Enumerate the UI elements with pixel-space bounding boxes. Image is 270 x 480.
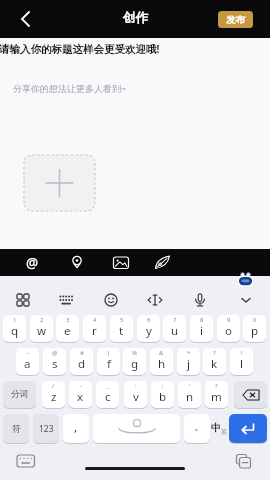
staticText: 9 xyxy=(227,316,231,324)
button[interactable]: ~ xyxy=(16,348,39,375)
staticText: a xyxy=(24,356,31,372)
button[interactable] xyxy=(188,288,212,312)
button[interactable] xyxy=(65,250,89,275)
button[interactable]: % xyxy=(123,348,146,375)
button[interactable]: ' xyxy=(178,381,201,408)
staticText: | xyxy=(107,349,111,357)
button[interactable]: 7 xyxy=(163,315,186,342)
button[interactable]: 3 xyxy=(56,315,79,342)
button[interactable]: , xyxy=(63,414,89,443)
staticText: o xyxy=(225,323,232,339)
staticText: f xyxy=(107,356,111,372)
staticText: , xyxy=(74,418,78,434)
button[interactable] xyxy=(12,6,40,32)
button[interactable]: _ xyxy=(96,381,119,408)
staticText: 7 xyxy=(173,316,177,324)
button[interactable]: @ xyxy=(43,348,66,375)
staticText: 请输入你的标题这样会更受欢迎哦! xyxy=(0,42,160,56)
staticText: _ xyxy=(106,382,109,390)
button[interactable]: 123 xyxy=(33,414,59,443)
button[interactable] xyxy=(143,288,167,312)
button[interactable] xyxy=(11,288,35,312)
button[interactable] xyxy=(12,450,40,472)
staticText: g xyxy=(131,356,139,372)
staticText: k xyxy=(211,356,218,372)
button[interactable] xyxy=(149,250,173,275)
staticText: z xyxy=(51,389,57,405)
button[interactable] xyxy=(236,271,256,288)
staticText: ? xyxy=(213,349,216,357)
button[interactable]: ? xyxy=(203,348,226,375)
button[interactable]: 6 xyxy=(137,315,160,342)
staticText: d xyxy=(78,356,86,372)
staticText: / xyxy=(52,382,55,390)
staticText: e xyxy=(64,323,71,339)
staticText: : xyxy=(135,382,137,390)
staticText: t xyxy=(119,323,124,339)
staticText: 3 xyxy=(66,316,70,324)
button[interactable]: - xyxy=(69,381,92,408)
staticText: 6 xyxy=(147,316,151,324)
staticText: 8 xyxy=(200,316,204,324)
button[interactable]: : xyxy=(124,381,147,408)
button[interactable]: 4 xyxy=(83,315,106,342)
button[interactable]: ? xyxy=(205,381,228,408)
staticText: ! xyxy=(241,349,243,357)
button[interactable] xyxy=(229,414,267,443)
staticText: @ xyxy=(26,254,39,272)
button[interactable]: 0 xyxy=(243,315,266,342)
staticText: * xyxy=(187,349,191,357)
staticText: w xyxy=(37,323,47,339)
staticText: 中 xyxy=(211,421,221,434)
staticText: p xyxy=(251,323,259,339)
staticText: # xyxy=(80,349,84,357)
staticText: ; xyxy=(162,382,164,390)
button[interactable] xyxy=(230,450,258,472)
staticText: v xyxy=(133,389,139,405)
staticText: 符 xyxy=(12,423,21,434)
button[interactable] xyxy=(93,414,180,443)
staticText: b xyxy=(159,389,167,405)
button[interactable]: ! xyxy=(230,348,253,375)
staticText: 123 xyxy=(39,423,54,435)
button[interactable]: & xyxy=(150,348,173,375)
staticText: 1 xyxy=(13,316,17,324)
button[interactable] xyxy=(234,381,267,408)
button[interactable]: 。 xyxy=(184,414,210,443)
button[interactable] xyxy=(109,250,133,275)
staticText: q xyxy=(11,323,19,339)
button[interactable] xyxy=(24,155,95,211)
button[interactable]: | xyxy=(97,348,120,375)
button[interactable]: 1 xyxy=(3,315,26,342)
button[interactable]: 分词 xyxy=(3,381,36,408)
button[interactable] xyxy=(54,288,78,312)
button[interactable]: 中 xyxy=(211,414,227,443)
staticText: 分享你的想法让更多人看到~ xyxy=(13,82,127,94)
button[interactable] xyxy=(99,288,123,312)
button[interactable]: 9 xyxy=(217,315,240,342)
button[interactable]: / xyxy=(42,381,65,408)
button[interactable]: # xyxy=(70,348,93,375)
button[interactable]: ; xyxy=(151,381,174,408)
staticText: ' xyxy=(189,382,191,390)
staticText: ? xyxy=(215,382,218,390)
staticText: ~ xyxy=(26,349,30,357)
button[interactable]: 5 xyxy=(110,315,133,342)
button[interactable]: 2 xyxy=(30,315,53,342)
staticText: 分词 xyxy=(11,389,28,400)
button[interactable]: 8 xyxy=(190,315,213,342)
staticText: 4 xyxy=(93,316,97,324)
button[interactable]: 发布 xyxy=(218,11,253,28)
staticText: 0 xyxy=(253,316,257,324)
staticText: h xyxy=(158,356,166,372)
button[interactable]: 符 xyxy=(3,414,29,443)
staticText: y xyxy=(146,323,152,339)
staticText: 英 xyxy=(221,428,227,436)
staticText: u xyxy=(171,323,179,339)
staticText: n xyxy=(186,389,194,405)
button[interactable] xyxy=(234,288,258,312)
button[interactable]: * xyxy=(177,348,200,375)
staticText: % xyxy=(132,349,137,357)
button[interactable]: @ xyxy=(20,250,44,275)
staticText: s xyxy=(52,356,58,372)
